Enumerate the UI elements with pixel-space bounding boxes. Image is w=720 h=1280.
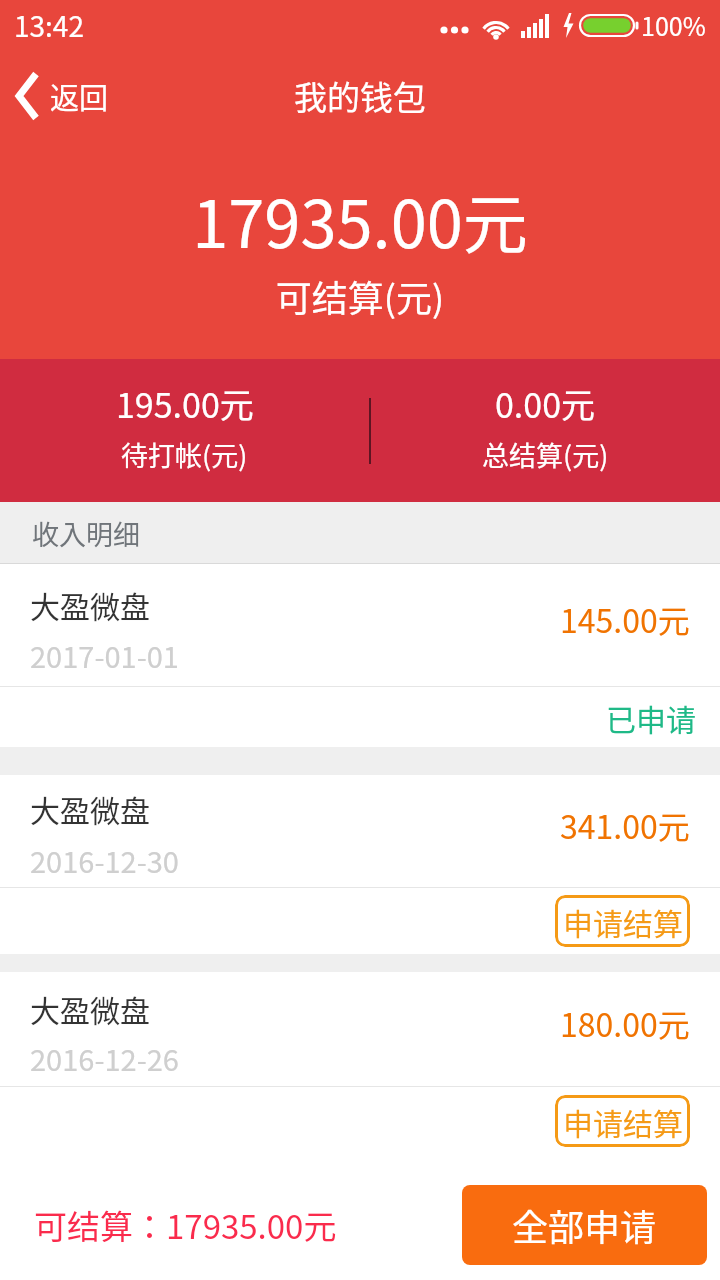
staticText: 收入明细 [32,514,140,553]
staticText: 180.00元 [560,1000,690,1046]
staticText: 可结算(元) [0,270,720,322]
staticText: 大盈微盘 [30,583,150,626]
staticText: 我的钱包 [294,72,426,120]
staticText: 17935.00元 [0,173,720,267]
staticText: 全部申请 [512,1199,657,1251]
button[interactable]: 大盈微盘 [0,775,720,887]
staticText: 待打帐(元) [121,435,248,474]
staticText: 申请结算 [563,1100,683,1143]
staticText: 可结算：17935.00元 [34,1201,337,1249]
staticText: 100% [641,7,706,43]
staticText: 返回 [50,75,109,117]
button[interactable]: 大盈微盘 [0,564,720,686]
staticText: 申请结算 [563,900,683,943]
button[interactable]: 返回 [14,71,109,121]
staticText: 2016-12-30 [30,839,179,881]
staticText: 大盈微盘 [30,987,150,1030]
button[interactable]: 全部申请 [462,1185,707,1265]
staticText: 总结算(元) [482,435,609,474]
button[interactable]: 已申请 [606,696,696,739]
staticText: 2017-01-01 [30,634,179,676]
staticText: 341.00元 [560,802,690,848]
button[interactable]: 申请结算 [555,895,690,947]
button[interactable]: 大盈微盘 [0,972,720,1086]
staticText: 13:42 [14,5,84,46]
staticText: 145.00元 [560,596,690,642]
staticText: 0.00元 [495,379,596,428]
staticText: 195.00元 [116,379,254,428]
staticText: 大盈微盘 [30,787,150,830]
staticText: 2016-12-26 [30,1037,179,1079]
button[interactable]: 申请结算 [555,1095,690,1147]
